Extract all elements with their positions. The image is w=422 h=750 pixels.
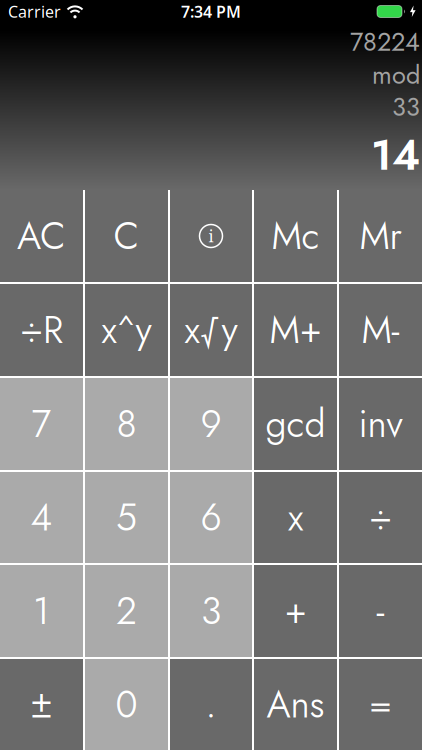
button[interactable]: gcd (254, 378, 337, 470)
staticText: 3 (201, 584, 221, 638)
button[interactable]: 2 (85, 565, 168, 657)
staticText: C (113, 209, 139, 263)
staticText: = (369, 677, 392, 731)
staticText: 5 (116, 490, 137, 544)
button[interactable]: 1 (0, 565, 83, 657)
button[interactable]: 0 (85, 659, 168, 750)
button[interactable]: 9 (170, 378, 252, 470)
staticText: i (208, 225, 213, 247)
staticText: 7:34 PM (181, 1, 241, 22)
button[interactable]: M+ (254, 284, 337, 376)
button[interactable]: x√y (170, 284, 252, 376)
staticText: ± (30, 677, 53, 731)
button[interactable]: Mr (339, 190, 422, 282)
button[interactable]: 6 (170, 472, 252, 563)
button[interactable]: ÷ (339, 472, 422, 563)
staticText: 4 (30, 490, 52, 544)
button[interactable]: Info (170, 190, 252, 282)
button[interactable]: 5 (85, 472, 168, 563)
button[interactable]: - (339, 565, 422, 657)
button[interactable]: Ans (254, 659, 337, 750)
button[interactable]: 4 (0, 472, 83, 563)
button[interactable]: inv (339, 378, 422, 470)
staticText: 6 (200, 490, 221, 544)
staticText: + (284, 584, 306, 638)
button[interactable]: x (254, 472, 337, 563)
button[interactable]: C (85, 190, 168, 282)
staticText: 7 (31, 397, 51, 451)
staticText: ÷R (20, 303, 63, 357)
staticText: 9 (200, 397, 221, 451)
staticText: - (376, 584, 384, 638)
button[interactable]: + (254, 565, 337, 657)
button[interactable]: AC (0, 190, 83, 282)
staticText: 1 (33, 584, 50, 638)
button[interactable]: = (339, 659, 422, 750)
staticText: 78224 (350, 24, 420, 60)
button[interactable]: 7 (0, 378, 83, 470)
staticText: AC (17, 209, 66, 263)
button[interactable]: 8 (85, 378, 168, 470)
button[interactable]: x^y (85, 284, 168, 376)
staticText: mod (372, 57, 420, 93)
staticText: x (288, 490, 303, 544)
staticText: x^y (101, 303, 151, 357)
staticText: Carrier (8, 1, 61, 22)
staticText: x√y (184, 303, 237, 357)
button[interactable]: . (170, 659, 252, 750)
staticText: inv (358, 397, 402, 451)
button[interactable]: Mc (254, 190, 337, 282)
staticText: Mc (271, 209, 319, 263)
staticText: 0 (115, 677, 137, 731)
staticText: M+ (269, 303, 321, 357)
button[interactable]: 3 (170, 565, 252, 657)
staticText: 33 (392, 89, 420, 125)
button[interactable]: M- (339, 284, 422, 376)
staticText: 8 (116, 397, 136, 451)
staticText: 14 (371, 124, 420, 186)
button[interactable]: ÷R (0, 284, 83, 376)
staticText: ÷ (369, 490, 392, 544)
staticText: . (205, 677, 216, 731)
staticText: gcd (265, 397, 325, 451)
staticText: 2 (116, 584, 137, 638)
button[interactable]: ± (0, 659, 83, 750)
staticText: Ans (266, 677, 324, 731)
staticText: M- (361, 303, 399, 357)
staticText: Mr (359, 209, 401, 263)
